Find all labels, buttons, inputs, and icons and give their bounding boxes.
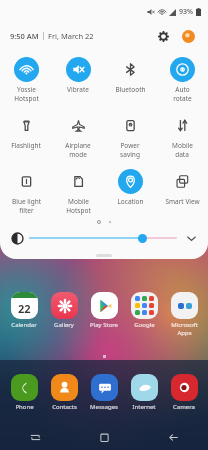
staticText: Calendar [11, 321, 37, 329]
button[interactable]: 22 [4, 290, 44, 331]
staticText: Fri, March 22 [48, 31, 94, 41]
button[interactable]: Bluetooth [104, 52, 156, 108]
staticText: Messages [90, 403, 118, 411]
staticText: Mobile [172, 141, 193, 150]
button[interactable]: Gallery [44, 290, 84, 331]
button[interactable]: Blue light [0, 164, 52, 220]
staticText: Location [117, 197, 144, 206]
staticText: data [175, 150, 189, 159]
button[interactable]: Airplane [52, 108, 104, 164]
button[interactable]: Messages [84, 372, 124, 413]
staticText: Smart View [165, 197, 200, 206]
staticText: Gallery [54, 321, 74, 329]
button[interactable]: Mobile [156, 108, 208, 164]
staticText: Camera [173, 403, 195, 411]
staticText: mode [69, 150, 87, 159]
button[interactable]: Microsoft Apps [164, 290, 204, 339]
button[interactable]: Power [104, 108, 156, 164]
button[interactable]: Smart View [156, 164, 208, 220]
button[interactable]: Camera [164, 372, 204, 413]
staticText: Hotspot [66, 206, 91, 215]
button[interactable]: User profile [178, 26, 198, 46]
staticText: Play Store [90, 321, 118, 329]
staticText: Airplane [65, 141, 91, 150]
staticText: saving [120, 150, 140, 159]
button[interactable]: Mobile [52, 164, 104, 220]
button[interactable]: Location [104, 164, 156, 220]
staticText: Blue light [12, 197, 41, 206]
staticText: Power [120, 141, 140, 150]
staticText: 9:50 AM [10, 31, 39, 41]
button[interactable]: Vibrate [52, 52, 104, 108]
button[interactable]: Auto [156, 52, 208, 108]
button[interactable]: Flashlight [0, 108, 52, 164]
staticText: Bluetooth [115, 85, 146, 94]
staticText: Phone [15, 403, 34, 411]
staticText: Google [134, 321, 155, 329]
staticText: rotate [173, 94, 192, 103]
staticText: Flashlight [11, 141, 41, 150]
button[interactable]: Back [139, 424, 208, 450]
staticText: 22 [18, 301, 31, 316]
button[interactable]: Recents [0, 424, 70, 450]
staticText: Vibrate [67, 85, 89, 94]
button[interactable]: Internet [124, 372, 164, 413]
button[interactable]: Settings [153, 26, 173, 46]
button[interactable]: Google [124, 290, 164, 331]
button[interactable]: Phone [4, 372, 44, 413]
staticText: Internet [132, 403, 156, 411]
button[interactable] [29, 230, 177, 246]
button[interactable]: Home [70, 424, 139, 450]
staticText: Mobile [68, 197, 89, 206]
button[interactable]: Yossie [0, 52, 52, 108]
staticText: 93% [179, 7, 193, 17]
staticText: Auto [175, 85, 190, 94]
button[interactable]: Brightness [9, 230, 25, 246]
staticText: Contacts [52, 403, 77, 411]
button[interactable]: Contacts [44, 372, 84, 413]
staticText: filter [19, 206, 34, 215]
button[interactable]: Play Store [84, 290, 124, 331]
staticText: Hotspot [14, 94, 39, 103]
button[interactable]: Expand brightness settings [183, 230, 199, 246]
staticText: Microsoft Apps [171, 321, 198, 337]
staticText: Yossie [17, 85, 36, 94]
